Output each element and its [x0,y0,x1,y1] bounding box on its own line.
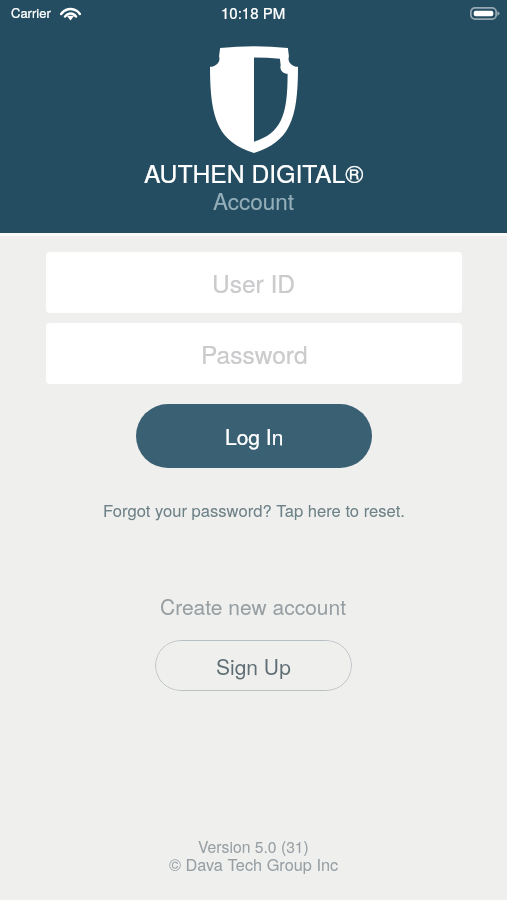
staticText: Version 5.0 (31) [198,835,309,857]
staticText: Password [201,336,308,371]
button[interactable]: Log In [136,404,372,468]
staticText: Sign Up [216,651,291,681]
other: Wi-Fi signal [61,6,80,20]
staticText: Carrier [11,3,51,22]
other: Battery [470,7,500,20]
staticText: AUTHEN DIGITAL® [144,155,364,190]
staticText: 10:18 PM [221,2,286,23]
staticText: Log In [225,421,284,451]
staticText: Account [213,184,295,216]
staticText: User ID [212,265,296,300]
button[interactable]: Sign Up [155,640,352,691]
button[interactable]: Forgot your password? Tap here to reset. [103,498,405,522]
staticText: Forgot your password? Tap here to reset. [103,498,405,522]
staticText: © Dava Tech Group Inc [169,852,339,875]
staticText: Create new account [160,591,347,621]
button[interactable]: User ID [46,252,462,313]
button[interactable]: Password [46,323,462,384]
